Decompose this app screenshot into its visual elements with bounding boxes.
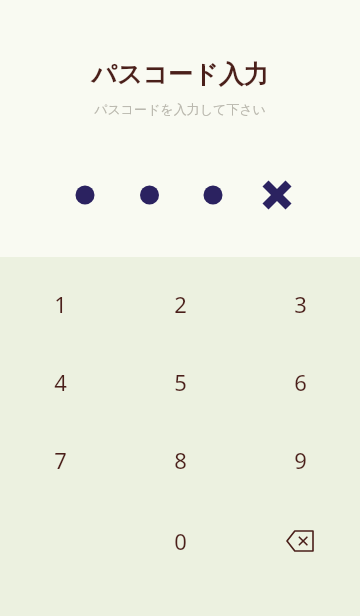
staticText: パスコード入力 [91,59,269,90]
button[interactable]: 6 [240,343,360,421]
staticText: 2 [174,289,187,319]
button[interactable]: Backspace [240,499,360,582]
staticText: 8 [174,445,187,475]
staticText: パスコードを入力して下さい [94,101,266,117]
button[interactable]: 0 [120,499,240,582]
button[interactable]: 1 [0,265,120,343]
staticText: 6 [294,367,307,397]
staticText: 0 [174,526,187,556]
staticText: 1 [54,289,67,319]
button[interactable]: 5 [120,343,240,421]
staticText: 9 [294,445,307,475]
staticText: 4 [54,367,67,397]
button[interactable]: 9 [240,421,360,499]
button[interactable]: 2 [120,265,240,343]
button[interactable]: 8 [120,421,240,499]
button[interactable]: 7 [0,421,120,499]
staticText: 7 [54,445,67,475]
button[interactable]: 4 [0,343,120,421]
staticText: 3 [294,289,307,319]
staticText: 5 [174,367,187,397]
button[interactable]: 3 [240,265,360,343]
